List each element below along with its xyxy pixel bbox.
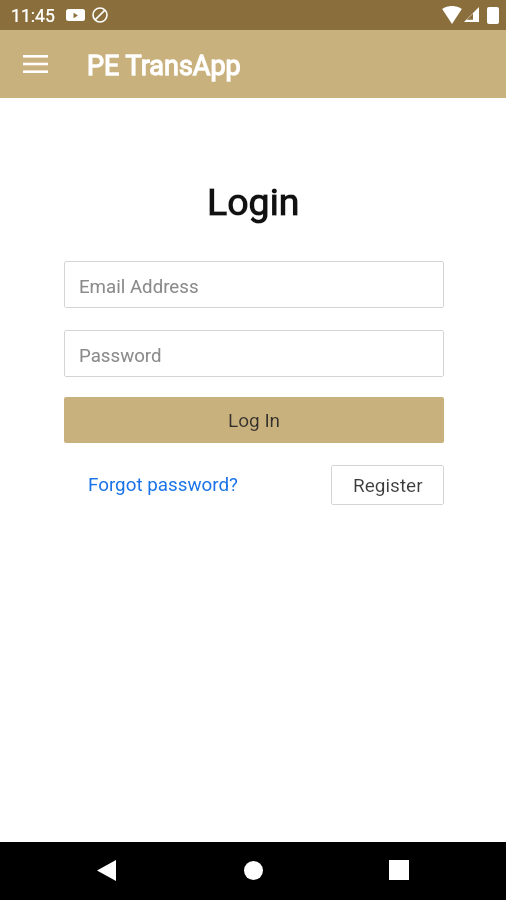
button[interactable]: Password — [64, 330, 444, 377]
staticText: Login — [207, 180, 300, 224]
staticText: PE TransApp — [87, 50, 241, 82]
staticText: Forgot password? — [88, 474, 238, 496]
staticText: Log In — [228, 409, 281, 431]
staticText: 11:45 — [11, 6, 55, 27]
button[interactable]: Register — [331, 465, 444, 505]
staticText: Register — [353, 474, 423, 496]
button[interactable]: Home — [229, 846, 277, 894]
button[interactable]: Back — [82, 846, 130, 894]
button[interactable]: Open navigation menu — [11, 40, 59, 88]
button[interactable]: Log In — [64, 397, 444, 443]
button[interactable]: Email Address — [64, 261, 444, 308]
staticText: Password — [79, 345, 162, 367]
staticText: Email Address — [79, 276, 199, 298]
button[interactable]: Recent apps — [375, 846, 423, 894]
button[interactable]: Forgot password? — [82, 471, 244, 499]
